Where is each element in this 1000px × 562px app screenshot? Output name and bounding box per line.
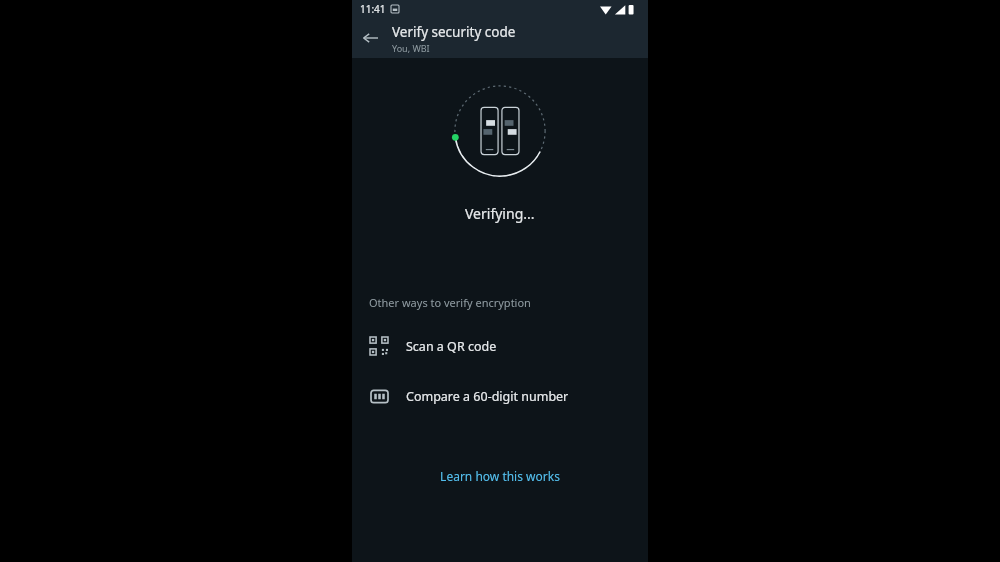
staticText: You, WBI [392, 42, 430, 54]
staticText: 11:41 [360, 2, 386, 16]
button[interactable]: Compare a 60-digit number [352, 380, 648, 412]
staticText: Verify security code [392, 23, 516, 41]
staticText: Scan a QR code [406, 338, 497, 355]
button[interactable]: Learn how this works [428, 462, 572, 490]
button[interactable]: Scan a QR code [352, 330, 648, 362]
button[interactable]: Back [352, 20, 388, 56]
staticText: Compare a 60-digit number [406, 388, 569, 405]
staticText: Verifying... [465, 204, 535, 223]
staticText: Other ways to verify encryption [369, 295, 531, 310]
staticText: Learn how this works [440, 468, 560, 484]
